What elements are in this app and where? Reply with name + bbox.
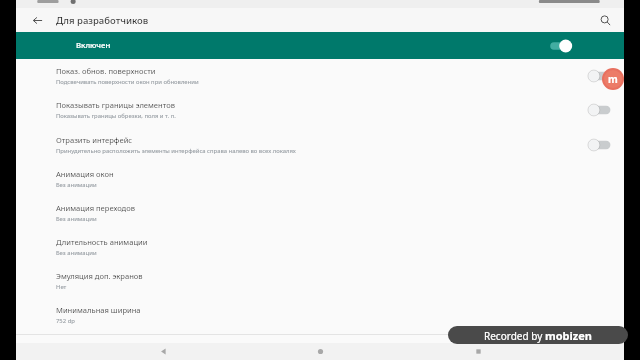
staticText: Без анимации — [56, 249, 97, 257]
button[interactable]: Toggle — [584, 101, 614, 119]
staticText: Показывать границы обрезки, поля и т. п. — [56, 112, 176, 120]
button[interactable]: Search — [596, 11, 614, 29]
button[interactable]: Home — [309, 343, 331, 360]
staticText: Длительность анимации — [56, 237, 148, 247]
staticText: Принудительно расположить элементы интер… — [56, 147, 296, 155]
staticText: Без анимации — [56, 215, 97, 223]
staticText: Без анимации — [56, 181, 97, 189]
staticText: Подсвечивать поверхности окон при обновл… — [56, 78, 199, 86]
staticText: Нет — [56, 283, 67, 291]
other: Developer options on — [546, 37, 576, 55]
button[interactable]: Recent apps — [467, 343, 489, 360]
button[interactable]: Эмуляция доп. экранов — [16, 264, 624, 298]
button[interactable]: Анимация переходов — [16, 196, 624, 230]
staticText: Для разработчиков — [56, 14, 149, 27]
button[interactable]: Длительность анимации — [16, 230, 624, 264]
button[interactable]: Back — [152, 343, 174, 360]
button[interactable]: Включен — [16, 32, 624, 59]
staticText: Анимация переходов — [56, 203, 135, 213]
button[interactable]: Анимация окон — [16, 162, 624, 196]
staticText: Эмуляция доп. экранов — [56, 271, 143, 281]
staticText: Recorded by — [484, 329, 545, 343]
staticText: Отразить интерфейс — [56, 135, 133, 145]
button[interactable]: Back — [28, 11, 46, 29]
button[interactable]: Mobizen — [602, 68, 624, 90]
button[interactable]: Toggle — [584, 67, 614, 85]
staticText: Включен — [76, 40, 111, 51]
button[interactable]: Показ. обнов. поверхности — [16, 59, 624, 92]
staticText: Анимация окон — [56, 169, 114, 179]
button[interactable]: Показывать границы элементов — [16, 92, 624, 127]
staticText: m — [608, 72, 618, 86]
staticText: Показывать границы элементов — [56, 100, 175, 110]
button[interactable]: Минимальная ширина — [16, 298, 624, 332]
staticText: Показ. обнов. поверхности — [56, 66, 156, 76]
staticText: mobizen — [545, 328, 592, 343]
button[interactable]: Отразить интерфейс — [16, 127, 624, 162]
staticText: 752 dp — [56, 317, 75, 325]
button[interactable]: Toggle — [584, 136, 614, 154]
staticText: Минимальная ширина — [56, 305, 141, 315]
